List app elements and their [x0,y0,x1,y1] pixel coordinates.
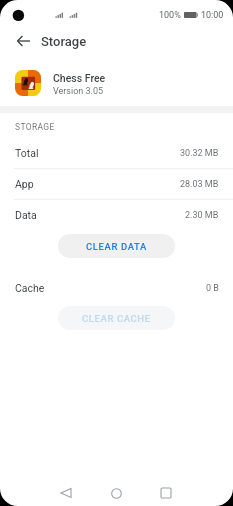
button[interactable]: Chess Free [0,62,233,104]
staticText: 2.30 MB [185,210,219,221]
staticText: 30.32 MB [180,148,219,159]
staticText: 0 B [206,283,219,294]
staticText: STORAGE [15,122,55,132]
staticText: CLEAR CACHE [82,313,151,324]
button[interactable]: Recent apps [150,477,182,506]
staticText: Chess Free [53,72,106,84]
button[interactable]: Cache [0,277,233,299]
button[interactable]: Data [0,204,233,226]
button[interactable]: Total [0,142,233,164]
button[interactable]: CLEAR CACHE [58,306,175,330]
button[interactable]: Home [100,477,132,506]
staticText: 28.03 MB [180,179,219,190]
staticText: Total [15,147,39,159]
button[interactable]: Back [9,27,37,55]
staticText: Storage [41,34,87,49]
staticText: Data [15,209,37,221]
staticText: App [15,178,34,190]
staticText: 100% [159,10,181,21]
staticText: Version 3.05 [53,86,104,97]
staticText: 10:00 [201,10,224,21]
staticText: Cache [15,282,45,294]
button[interactable]: Back [50,477,82,506]
button[interactable]: App [0,173,233,195]
button[interactable]: CLEAR DATA [58,234,175,258]
staticText: CLEAR DATA [86,241,147,252]
